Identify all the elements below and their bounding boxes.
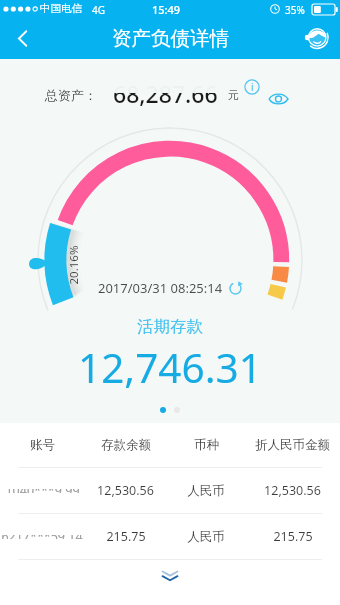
staticText: 6217***59.14 — [1, 528, 83, 545]
button[interactable]: Expand more — [0, 560, 340, 594]
staticText: 15:49 — [152, 2, 181, 17]
button[interactable]: Back — [0, 18, 44, 59]
staticText: 总资产： — [45, 87, 97, 103]
staticText: 中国电信 — [40, 2, 82, 15]
staticText: 人民币 — [187, 529, 225, 545]
staticText: 215.75 — [273, 528, 313, 545]
staticText: 12,746.31 — [78, 340, 262, 395]
staticText: 元 — [228, 88, 239, 102]
staticText: 35% — [285, 3, 305, 17]
staticText: 存款余额 — [101, 437, 151, 453]
staticText: 2017/03/31 08:25:14 — [98, 279, 223, 297]
staticText: 12,530.56 — [264, 482, 321, 499]
staticText: 资产负债详情 — [112, 26, 229, 51]
button[interactable]: 6217***59.14 — [0, 514, 340, 559]
staticText: 1040***9.99 — [5, 482, 80, 499]
staticText: 4G — [92, 3, 105, 17]
button[interactable]: Customer service — [296, 18, 340, 59]
button[interactable]: 1040***9.99 — [0, 468, 340, 513]
staticText: i — [251, 80, 254, 94]
staticText: 20.16% — [65, 245, 81, 284]
staticText: 币种 — [194, 437, 219, 453]
button[interactable]: Info — [244, 79, 260, 95]
staticText: 12,530.56 — [97, 482, 154, 499]
button[interactable]: Refresh — [228, 281, 243, 296]
staticText: 账号 — [30, 437, 55, 453]
staticText: 折人民币金额 — [255, 437, 330, 453]
staticText: 活期存款 — [137, 316, 203, 337]
button[interactable]: 账号 — [0, 423, 340, 467]
staticText: 68,287.66 — [113, 78, 218, 109]
staticText: 215.75 — [106, 528, 146, 545]
staticText: 人民币 — [187, 483, 225, 499]
button[interactable]: Toggle amount visibility — [268, 93, 289, 105]
